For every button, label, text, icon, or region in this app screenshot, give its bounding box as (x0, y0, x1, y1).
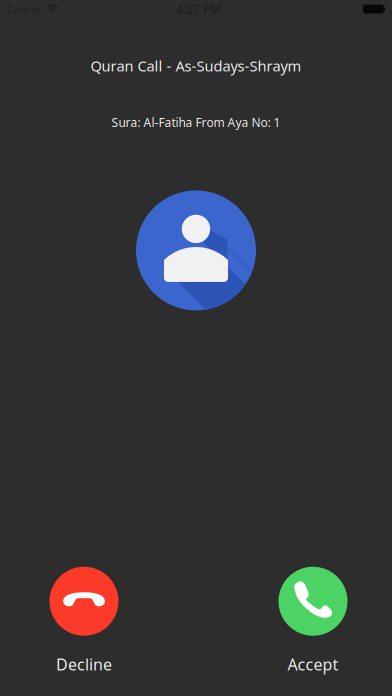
staticText: Sura: Al-Fatiha From Aya No: 1 (111, 114, 280, 130)
button[interactable]: Accept (248, 567, 378, 675)
staticText: Accept (287, 654, 338, 675)
staticText: Quran Call - As-Sudays-Shraym (90, 56, 301, 75)
staticText: 4:27 PM (176, 1, 221, 17)
staticText: Decline (56, 654, 112, 675)
staticText: Carrier (7, 2, 41, 16)
button[interactable]: Decline (19, 567, 149, 675)
